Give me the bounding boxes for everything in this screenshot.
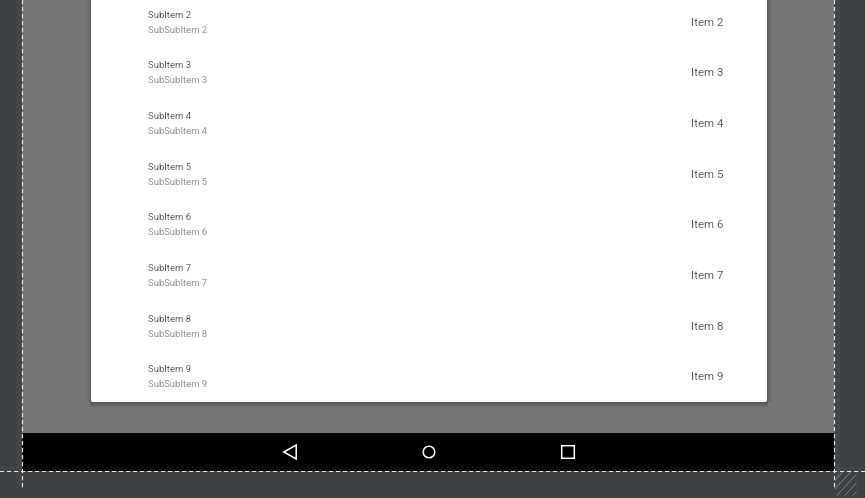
staticText: Item 7: [691, 268, 724, 281]
button[interactable]: SubItem 9: [91, 350, 767, 401]
staticText: Item 9: [691, 369, 724, 382]
button[interactable]: Recents: [556, 440, 580, 464]
staticText: SubItem 5: [148, 161, 191, 172]
button[interactable]: SubItem 2: [91, 0, 767, 47]
staticText: Item 8: [691, 319, 724, 332]
staticText: SubSubItem 6: [148, 226, 208, 237]
button[interactable]: SubItem 7: [91, 249, 767, 300]
staticText: SubItem 8: [148, 313, 191, 324]
staticText: Item 5: [691, 167, 724, 180]
staticText: SubItem 4: [148, 110, 191, 121]
staticText: SubItem 3: [148, 59, 191, 70]
button[interactable]: Back: [278, 440, 302, 464]
button[interactable]: Home: [417, 440, 441, 464]
button[interactable]: SubItem 3: [91, 46, 767, 97]
staticText: Item 4: [691, 116, 724, 129]
staticText: SubSubItem 4: [148, 125, 208, 136]
staticText: SubSubItem 7: [148, 277, 208, 288]
button[interactable]: SubItem 4: [91, 97, 767, 148]
staticText: SubSubItem 2: [148, 24, 208, 35]
staticText: SubItem 9: [148, 363, 191, 374]
button[interactable]: SubItem 6: [91, 198, 767, 249]
staticText: Item 3: [691, 65, 724, 78]
staticText: SubSubItem 9: [148, 378, 208, 389]
staticText: Item 6: [691, 217, 724, 230]
button[interactable]: SubItem 8: [91, 300, 767, 351]
button[interactable]: SubItem 5: [91, 148, 767, 199]
staticText: SubSubItem 8: [148, 328, 208, 339]
staticText: Item 2: [691, 15, 724, 28]
staticText: SubItem 6: [148, 211, 191, 222]
staticText: SubSubItem 3: [148, 74, 208, 85]
staticText: SubSubItem 5: [148, 176, 208, 187]
staticText: SubItem 7: [148, 262, 191, 273]
staticText: SubItem 2: [148, 9, 191, 20]
